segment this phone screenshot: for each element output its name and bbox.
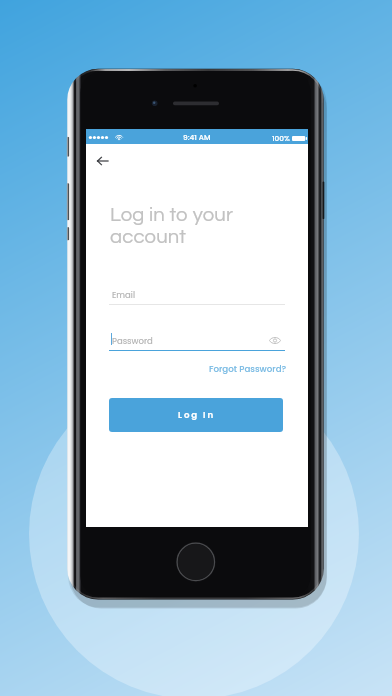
staticText: Log In <box>178 409 216 421</box>
staticText: Password <box>112 335 153 347</box>
staticText: Log in to your account <box>110 204 234 247</box>
staticText: 100% <box>272 133 290 143</box>
button[interactable]: Back <box>90 150 115 172</box>
button[interactable]: Log In <box>109 398 283 432</box>
staticText: Email <box>112 289 136 301</box>
staticText: Forgot Password? <box>209 363 287 375</box>
staticText: 9:41 AM <box>183 132 211 142</box>
button[interactable]: Forgot Password? <box>208 362 288 376</box>
button[interactable]: Show password <box>266 331 284 349</box>
